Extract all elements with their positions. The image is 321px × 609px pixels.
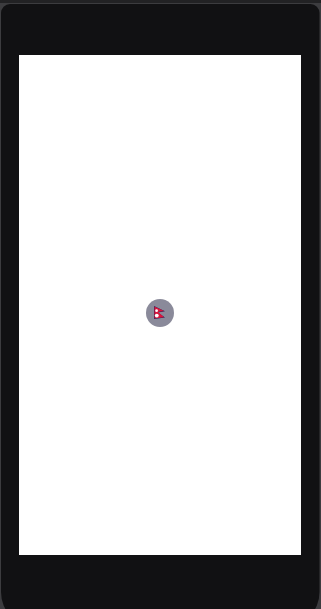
button[interactable]: Profile picture, flag of Nepal [146,299,174,327]
